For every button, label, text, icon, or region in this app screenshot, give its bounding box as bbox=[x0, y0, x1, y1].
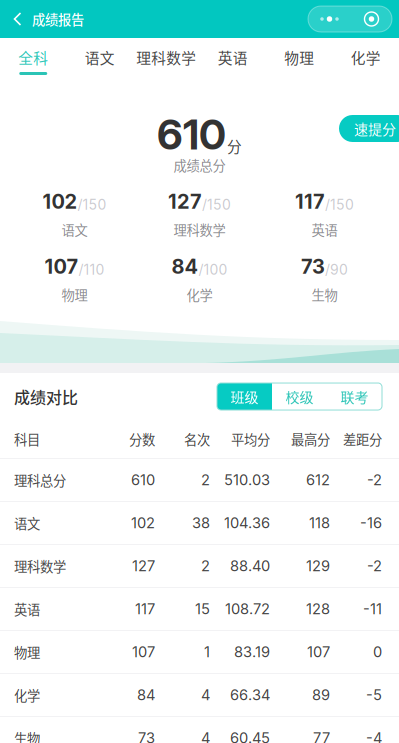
staticText: 104.36 bbox=[224, 514, 270, 532]
staticText: -4 bbox=[366, 729, 382, 743]
staticText: 英语 bbox=[14, 599, 40, 619]
button[interactable]: 成绩报告 bbox=[0, 0, 94, 38]
staticText: /150 bbox=[325, 196, 354, 213]
staticText: 117 bbox=[295, 189, 325, 214]
staticText: 510.03 bbox=[224, 471, 270, 489]
button[interactable]: 语文 bbox=[66, 38, 133, 79]
staticText: 610 bbox=[157, 109, 226, 159]
staticText: 2 bbox=[201, 557, 210, 575]
staticText: 129 bbox=[306, 557, 330, 575]
staticText: 语文 bbox=[14, 513, 40, 533]
staticText: 成绩报告 bbox=[32, 9, 84, 29]
staticText: -2 bbox=[367, 557, 382, 575]
staticText: 英语 bbox=[218, 47, 248, 68]
staticText: 15 bbox=[195, 600, 210, 618]
staticText: 107 bbox=[44, 254, 78, 279]
staticText: 理科数学 bbox=[173, 220, 225, 239]
staticText: 分 bbox=[227, 135, 242, 156]
staticText: 38 bbox=[192, 514, 210, 532]
staticText: -2 bbox=[367, 471, 382, 489]
button[interactable]: 联考 bbox=[327, 383, 382, 410]
staticText: 108.72 bbox=[225, 600, 270, 618]
staticText: 差距分 bbox=[343, 429, 382, 449]
staticText: 平均分 bbox=[231, 429, 270, 449]
staticText: 73 bbox=[138, 729, 155, 743]
staticText: 127 bbox=[132, 557, 155, 575]
staticText: 102 bbox=[131, 514, 155, 532]
staticText: 物理 bbox=[284, 47, 314, 68]
staticText: /150 bbox=[202, 196, 231, 213]
staticText: 107 bbox=[307, 643, 330, 661]
staticText: 化学 bbox=[351, 47, 381, 68]
button[interactable]: 英语 bbox=[199, 38, 266, 79]
staticText: 理科总分 bbox=[14, 470, 66, 490]
staticText: 60.45 bbox=[230, 729, 270, 743]
staticText: /100 bbox=[198, 261, 227, 278]
button[interactable]: 校级 bbox=[272, 383, 327, 410]
button[interactable]: 化学 bbox=[332, 38, 399, 79]
button[interactable]: 班级 bbox=[217, 383, 272, 410]
staticText: 化学 bbox=[14, 685, 40, 705]
button[interactable]: Close bbox=[351, 6, 392, 32]
staticText: -11 bbox=[363, 600, 382, 618]
staticText: /90 bbox=[325, 261, 348, 278]
staticText: 班级 bbox=[230, 386, 258, 407]
staticText: 英语 bbox=[311, 220, 337, 239]
staticText: 4 bbox=[201, 686, 210, 704]
staticText: /150 bbox=[77, 196, 106, 213]
staticText: -16 bbox=[360, 514, 382, 532]
staticText: 107 bbox=[132, 643, 155, 661]
staticText: 语文 bbox=[85, 47, 115, 68]
staticText: 612 bbox=[306, 471, 330, 489]
staticText: 4 bbox=[201, 729, 210, 743]
staticText: 610 bbox=[131, 471, 155, 489]
staticText: 理科数学 bbox=[136, 47, 196, 68]
staticText: 118 bbox=[309, 514, 330, 532]
staticText: 化学 bbox=[186, 285, 212, 304]
staticText: 联考 bbox=[340, 386, 368, 407]
staticText: 83.19 bbox=[234, 643, 270, 661]
staticText: 0 bbox=[373, 643, 382, 661]
staticText: 89 bbox=[312, 686, 330, 704]
staticText: -5 bbox=[366, 686, 382, 704]
staticText: 66.34 bbox=[230, 686, 270, 704]
staticText: 成绩对比 bbox=[14, 385, 78, 408]
staticText: 128 bbox=[306, 600, 330, 618]
staticText: 2 bbox=[201, 471, 210, 489]
staticText: 88.40 bbox=[230, 557, 270, 575]
button[interactable]: 速提分 bbox=[339, 115, 399, 142]
staticText: 校级 bbox=[285, 386, 313, 407]
button[interactable]: 全科 bbox=[0, 38, 66, 79]
staticText: 速提分 bbox=[354, 118, 396, 139]
staticText: 理科数学 bbox=[14, 556, 66, 576]
button[interactable]: More bbox=[308, 6, 351, 32]
staticText: 物理 bbox=[61, 285, 87, 304]
staticText: 物理 bbox=[14, 642, 40, 662]
staticText: 117 bbox=[135, 600, 155, 618]
staticText: 77 bbox=[313, 729, 330, 743]
staticText: 科目 bbox=[14, 429, 40, 449]
staticText: /110 bbox=[78, 261, 104, 278]
staticText: 生物 bbox=[311, 285, 337, 304]
staticText: 84 bbox=[137, 686, 155, 704]
staticText: 最高分 bbox=[291, 429, 330, 449]
staticText: 73 bbox=[301, 254, 325, 279]
staticText: 127 bbox=[168, 189, 202, 214]
staticText: 成绩总分 bbox=[173, 155, 225, 175]
button[interactable]: 物理 bbox=[266, 38, 332, 79]
staticText: 1 bbox=[204, 643, 210, 661]
staticText: 全科 bbox=[18, 47, 48, 68]
staticText: 102 bbox=[42, 189, 77, 214]
staticText: 生物 bbox=[14, 728, 40, 743]
staticText: 名次 bbox=[184, 429, 210, 449]
staticText: 语文 bbox=[61, 220, 87, 239]
staticText: 分数 bbox=[129, 429, 155, 449]
staticText: 84 bbox=[171, 254, 198, 279]
button[interactable]: 理科数学 bbox=[133, 38, 199, 79]
